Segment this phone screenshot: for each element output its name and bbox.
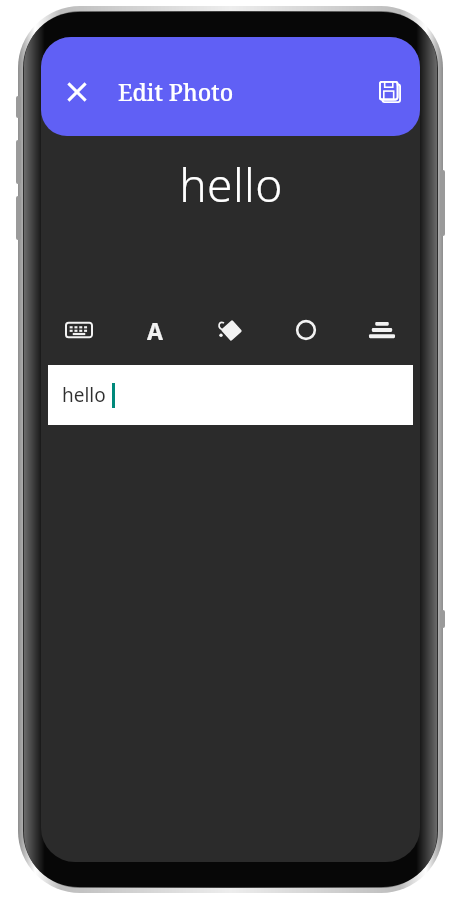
button[interactable]: Keyboard (55, 306, 103, 354)
button[interactable]: hello (48, 365, 413, 425)
button[interactable]: Save (368, 70, 412, 114)
staticText: hello (179, 153, 283, 216)
staticText: A (147, 315, 163, 346)
button[interactable]: Opacity (282, 306, 330, 354)
staticText: Edit Photo (118, 76, 234, 107)
button[interactable]: Alignment (358, 306, 406, 354)
button[interactable]: Close (53, 68, 101, 116)
staticText: hello (62, 382, 106, 408)
button[interactable]: Font (131, 306, 179, 354)
button[interactable]: Fill colour (207, 306, 255, 354)
